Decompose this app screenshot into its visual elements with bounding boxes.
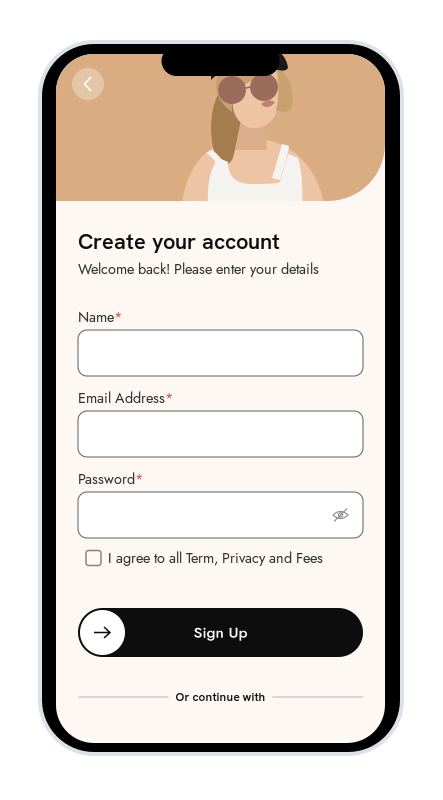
button[interactable]: [78, 492, 363, 538]
staticText: Name: [78, 307, 114, 327]
staticText: Sign Up: [193, 621, 247, 644]
staticText: Welcome back! Please enter your details: [78, 259, 319, 279]
staticText: *: [114, 307, 123, 327]
staticText: *: [135, 469, 144, 489]
button[interactable]: [78, 411, 363, 457]
staticText: Create your account: [78, 227, 280, 256]
button[interactable]: I agree to all Term, Privacy and Fees: [78, 545, 363, 571]
staticText: I agree to all Term, Privacy and Fees: [108, 548, 323, 568]
staticText: *: [165, 388, 174, 408]
staticText: Password: [78, 469, 135, 489]
button[interactable]: Back: [72, 68, 104, 100]
staticText: Or continue with: [175, 689, 265, 705]
button[interactable]: Sign Up: [78, 608, 363, 657]
staticText: Email Address: [78, 388, 165, 408]
button[interactable]: [78, 330, 363, 376]
